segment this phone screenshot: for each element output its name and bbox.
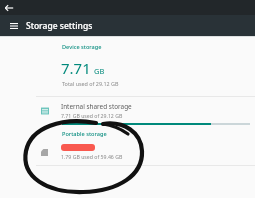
- button[interactable]: Open navigation menu: [8, 20, 19, 31]
- staticText: GB: [94, 66, 105, 76]
- button[interactable]: 1.79 GB used of 59.46 GB: [0, 144, 255, 160]
- button[interactable]: Internal shared storage: [0, 97, 255, 130]
- staticText: Device storage: [62, 43, 102, 51]
- staticText: Storage settings: [26, 20, 93, 32]
- staticText: Internal shared storage: [61, 102, 132, 111]
- staticText: 7.71: [61, 58, 91, 78]
- staticText: Portable storage: [62, 130, 107, 138]
- staticText: 1.79 GB used of 59.46 GB: [61, 153, 123, 160]
- button[interactable]: Back: [2, 1, 16, 15]
- staticText: Total used of 29.12 GB: [62, 80, 119, 87]
- staticText: 7.71 GB used of 29.12 GB: [61, 112, 123, 119]
